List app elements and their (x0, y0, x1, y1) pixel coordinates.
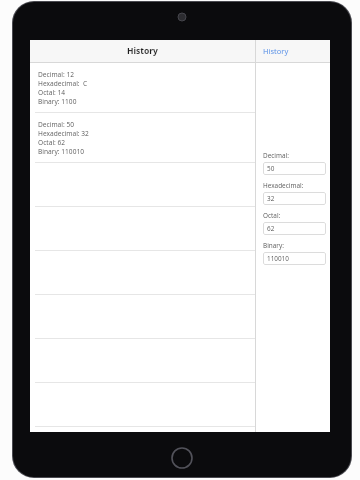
button[interactable]: Binary: (263, 252, 326, 265)
staticText: History (127, 45, 158, 57)
staticText: Hexadecimal: 32 (38, 129, 89, 138)
staticText: Binary: 1100 (38, 97, 77, 106)
staticText: Octal: 62 (38, 138, 66, 147)
button[interactable]: Decimal: 50 (30, 113, 255, 162)
button[interactable]: History (256, 40, 330, 62)
staticText: Decimal: 50 (38, 120, 74, 129)
staticText: History (263, 46, 289, 56)
staticText: Decimal: 12 (38, 70, 74, 79)
staticText: Binary: 110010 (38, 147, 84, 156)
button[interactable]: Decimal: (263, 162, 326, 175)
button[interactable]: History (30, 40, 255, 62)
staticText: 50 (267, 164, 275, 173)
staticText: 32 (267, 194, 275, 203)
staticText: Hexadecimal: C (38, 79, 88, 88)
staticText: Decimal: (263, 151, 289, 160)
button[interactable]: Decimal: 12 (30, 63, 255, 112)
staticText: Octal: 14 (38, 88, 66, 97)
button[interactable]: Octal: (263, 222, 326, 235)
button[interactable]: Hexadecimal: (263, 192, 326, 205)
staticText: Hexadecimal: (263, 181, 304, 190)
staticText: Binary: (263, 241, 284, 250)
staticText: Octal: (263, 211, 281, 220)
staticText: 110010 (267, 254, 289, 263)
staticText: 62 (267, 224, 275, 233)
